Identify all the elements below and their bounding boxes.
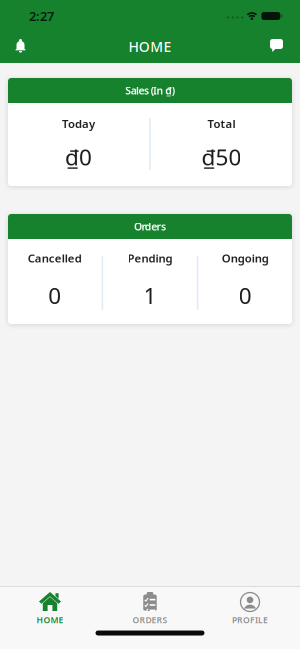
staticText: ₫0: [65, 141, 92, 172]
staticText: Cancelled: [28, 250, 82, 266]
staticText: HOME: [36, 614, 63, 626]
staticText: Pending: [127, 250, 172, 266]
staticText: Sales (In ₫): [125, 83, 175, 98]
staticText: ₫50: [201, 141, 241, 172]
button[interactable]: HOME: [0, 592, 100, 626]
button[interactable]: Notifications: [0, 36, 25, 53]
staticText: Total: [207, 116, 235, 131]
button[interactable]: Messages: [270, 37, 300, 52]
staticText: Orders: [134, 219, 166, 234]
staticText: 2:27: [29, 7, 54, 25]
button[interactable]: ORDERS: [100, 592, 200, 626]
staticText: 1: [143, 280, 156, 310]
staticText: Ongoing: [222, 250, 269, 266]
staticText: ORDERS: [132, 614, 167, 626]
button[interactable]: PROFILE: [200, 592, 300, 626]
staticText: 0: [239, 280, 252, 310]
staticText: HOME: [129, 37, 171, 56]
staticText: PROFILE: [232, 614, 268, 626]
staticText: 0: [48, 280, 61, 310]
staticText: Today: [62, 116, 95, 131]
